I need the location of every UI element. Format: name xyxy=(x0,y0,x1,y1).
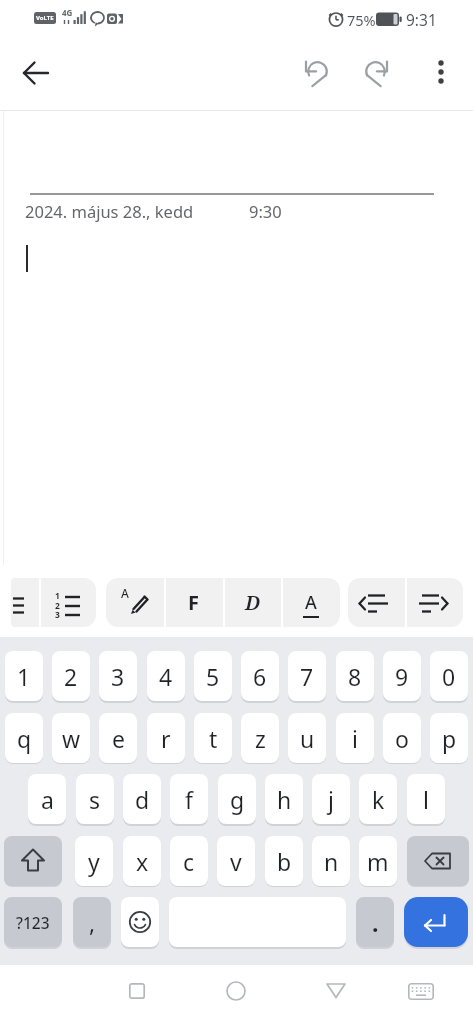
button[interactable]: a xyxy=(28,774,66,824)
staticText: 3 xyxy=(111,661,125,692)
staticText: b xyxy=(277,846,292,877)
button[interactable]: 2 xyxy=(52,651,90,701)
staticText: r xyxy=(161,723,171,754)
button[interactable]: c xyxy=(170,836,208,886)
button[interactable]: l xyxy=(407,774,445,824)
staticText: 6 xyxy=(253,661,267,692)
staticText: 1 xyxy=(17,661,31,692)
button[interactable]: q xyxy=(5,713,43,763)
button[interactable]: r xyxy=(147,713,185,763)
button[interactable]: j xyxy=(312,774,350,824)
staticText: l xyxy=(423,784,429,815)
staticText: s xyxy=(89,784,101,815)
staticText: x xyxy=(136,846,149,877)
button[interactable]: v xyxy=(217,836,255,886)
button[interactable]: F xyxy=(164,578,223,627)
staticText: . xyxy=(372,907,379,938)
button[interactable]: w xyxy=(52,713,90,763)
button[interactable] xyxy=(407,836,469,886)
button[interactable]: n xyxy=(312,836,350,886)
button[interactable] xyxy=(120,974,154,1008)
button[interactable]: t xyxy=(194,713,232,763)
button[interactable]: e xyxy=(99,713,137,763)
button[interactable] xyxy=(403,974,437,1008)
staticText: 3 xyxy=(55,609,60,621)
button[interactable] xyxy=(425,52,457,94)
button[interactable]: k xyxy=(359,774,397,824)
button[interactable]: i xyxy=(336,713,374,763)
button[interactable]: s xyxy=(76,774,114,824)
staticText: z xyxy=(255,723,266,754)
button[interactable] xyxy=(404,897,468,947)
button[interactable]: h xyxy=(265,774,303,824)
button[interactable]: p xyxy=(430,713,468,763)
button[interactable] xyxy=(219,974,253,1008)
staticText: F xyxy=(188,589,199,616)
button[interactable]: 3 xyxy=(99,651,137,701)
staticText: 0 xyxy=(442,661,456,692)
button[interactable] xyxy=(303,58,329,90)
button[interactable]: 0 xyxy=(430,651,468,701)
button[interactable]: 4 xyxy=(147,651,185,701)
staticText: e xyxy=(112,723,125,754)
staticText: v xyxy=(230,846,242,877)
staticText: w xyxy=(62,723,81,754)
staticText: 4 xyxy=(159,661,173,692)
button[interactable]: , xyxy=(73,897,111,947)
button[interactable] xyxy=(14,51,58,95)
button[interactable]: m xyxy=(359,836,397,886)
staticText: h xyxy=(277,784,292,815)
staticText: 1 xyxy=(55,590,60,602)
button[interactable]: u xyxy=(288,713,326,763)
staticText: t xyxy=(209,723,218,754)
button[interactable]: d xyxy=(123,774,161,824)
button[interactable]: 7 xyxy=(288,651,326,701)
button[interactable]: g xyxy=(218,774,256,824)
staticText: p xyxy=(442,723,457,754)
staticText: 4G xyxy=(62,7,73,18)
button[interactable]: 1 xyxy=(5,651,43,701)
staticText: m xyxy=(367,846,389,877)
button[interactable]: f xyxy=(170,774,208,824)
button[interactable] xyxy=(364,58,390,90)
button[interactable] xyxy=(406,578,463,627)
button[interactable]: x xyxy=(123,836,161,886)
button[interactable]: . xyxy=(356,897,394,947)
staticText: 75% xyxy=(347,10,376,30)
staticText: 2 xyxy=(55,600,60,612)
staticText: d xyxy=(135,784,150,815)
button[interactable]: o xyxy=(383,713,421,763)
staticText: 2 xyxy=(64,661,78,692)
button[interactable]: D xyxy=(223,578,282,627)
button[interactable] xyxy=(121,897,159,947)
staticText: 2024. május 28., kedd xyxy=(25,200,194,222)
staticText: 9 xyxy=(395,661,409,692)
staticText: 5 xyxy=(206,661,220,692)
staticText: u xyxy=(300,723,315,754)
button[interactable] xyxy=(40,578,96,627)
staticText: VoLTE xyxy=(36,14,54,22)
staticText: n xyxy=(324,846,339,877)
button[interactable]: z xyxy=(241,713,279,763)
button[interactable] xyxy=(319,974,353,1008)
staticText: D xyxy=(245,589,261,616)
button[interactable] xyxy=(11,578,39,627)
staticText: ?123 xyxy=(16,912,50,933)
button[interactable]: A xyxy=(106,578,164,627)
button[interactable] xyxy=(4,836,62,886)
button[interactable]: 6 xyxy=(241,651,279,701)
staticText: , xyxy=(89,907,96,938)
button[interactable]: y xyxy=(75,836,113,886)
button[interactable]: 8 xyxy=(336,651,374,701)
staticText: A xyxy=(305,590,317,615)
button[interactable] xyxy=(348,578,404,627)
staticText: j xyxy=(328,784,334,815)
staticText: 9:30 xyxy=(249,200,282,222)
staticText: g xyxy=(230,784,245,815)
button[interactable]: 5 xyxy=(194,651,232,701)
button[interactable]: A xyxy=(281,578,340,627)
button[interactable]: b xyxy=(265,836,303,886)
button[interactable]: ?123 xyxy=(4,897,62,947)
button[interactable]: 9 xyxy=(383,651,421,701)
